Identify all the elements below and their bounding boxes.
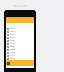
button[interactable] [6,45,34,48]
button[interactable] [6,60,34,66]
button[interactable] [6,27,34,30]
button[interactable] [6,42,34,45]
button[interactable] [6,30,34,33]
button[interactable] [6,39,34,42]
button[interactable] [6,51,34,54]
button[interactable] [6,33,34,36]
button[interactable] [6,57,34,60]
button[interactable] [6,36,34,39]
button[interactable] [6,48,34,51]
button[interactable] [6,54,34,57]
